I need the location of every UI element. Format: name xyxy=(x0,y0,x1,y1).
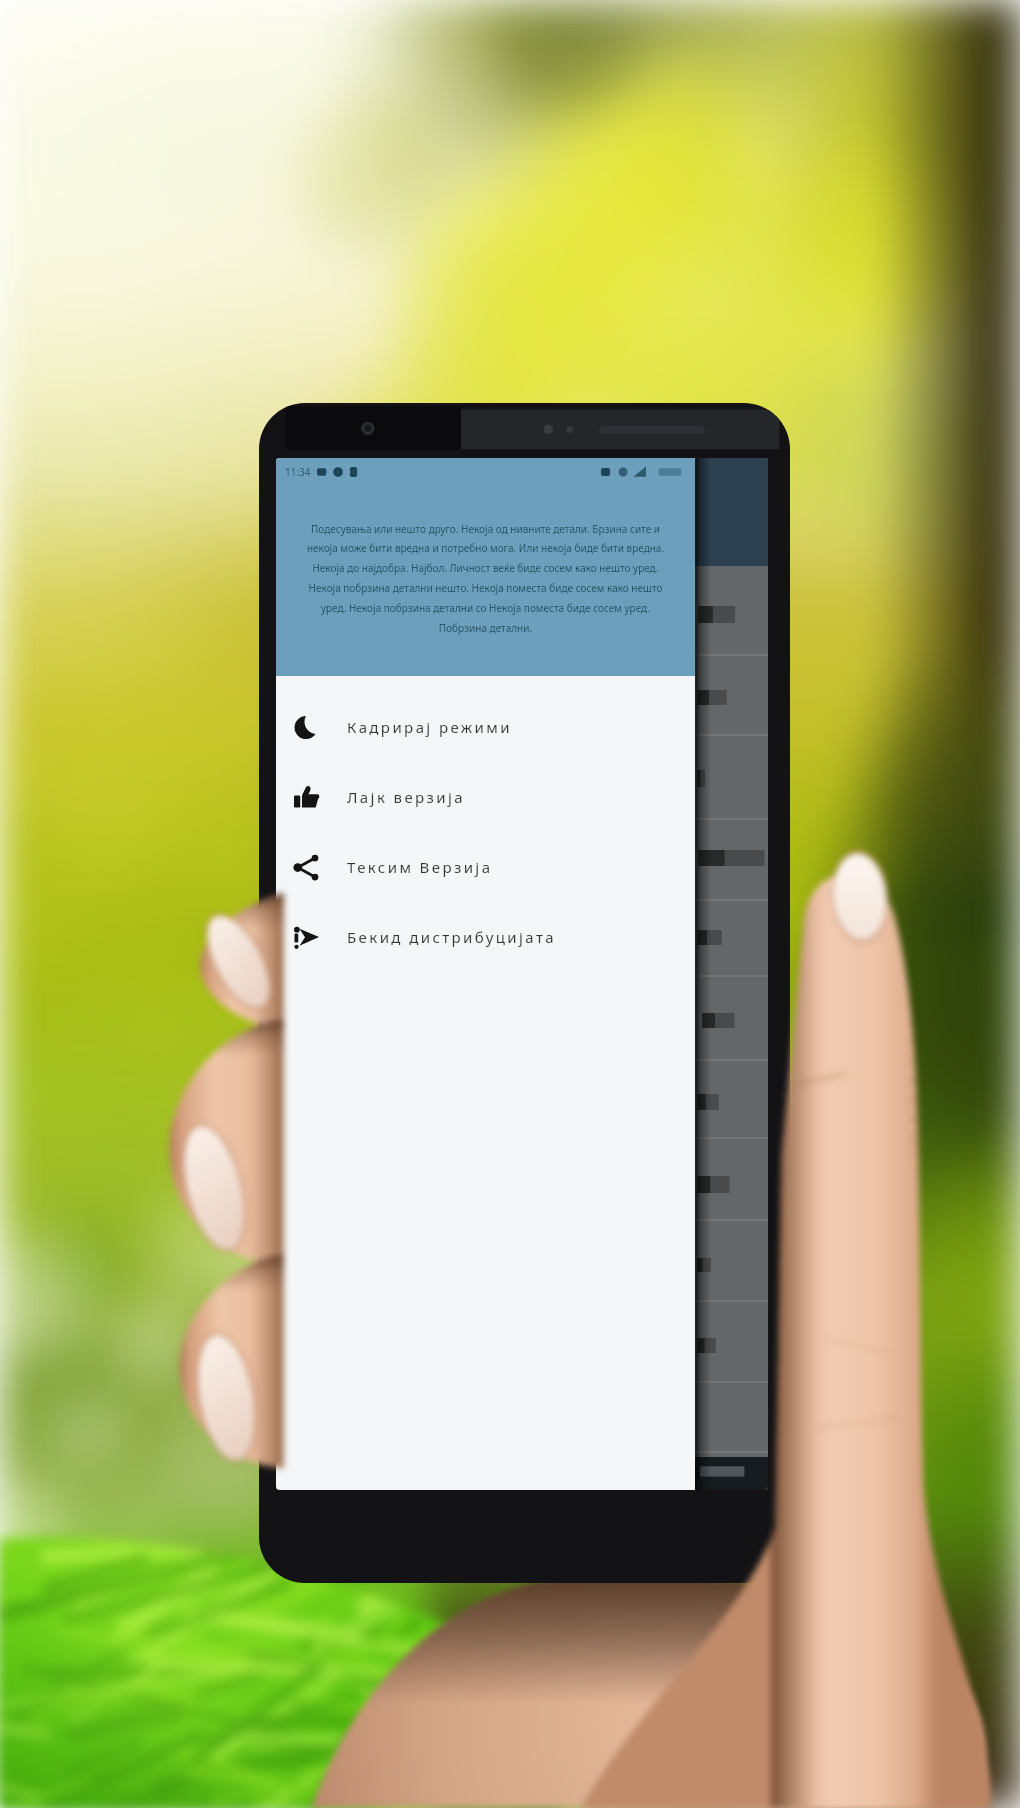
button[interactable]: Night mode xyxy=(276,692,695,762)
staticText: 11:34 xyxy=(285,465,311,479)
other: Share xyxy=(294,855,319,880)
button[interactable]: Share xyxy=(276,832,695,902)
button[interactable]: Send feedback xyxy=(276,902,695,972)
button[interactable]: Rate app xyxy=(276,762,695,832)
staticText: Подесувања или нешто друго. Некоја од ни… xyxy=(300,522,671,635)
staticText: Кадрирај режими xyxy=(347,717,512,737)
other: Send feedback xyxy=(294,925,319,950)
staticText: Тексим Верзија xyxy=(347,857,493,877)
other: Rate app xyxy=(294,785,319,810)
other: Night mode xyxy=(294,715,319,740)
staticText: Лајк верзија xyxy=(347,787,466,807)
staticText: Бекид дистрибуцијата xyxy=(347,927,556,947)
